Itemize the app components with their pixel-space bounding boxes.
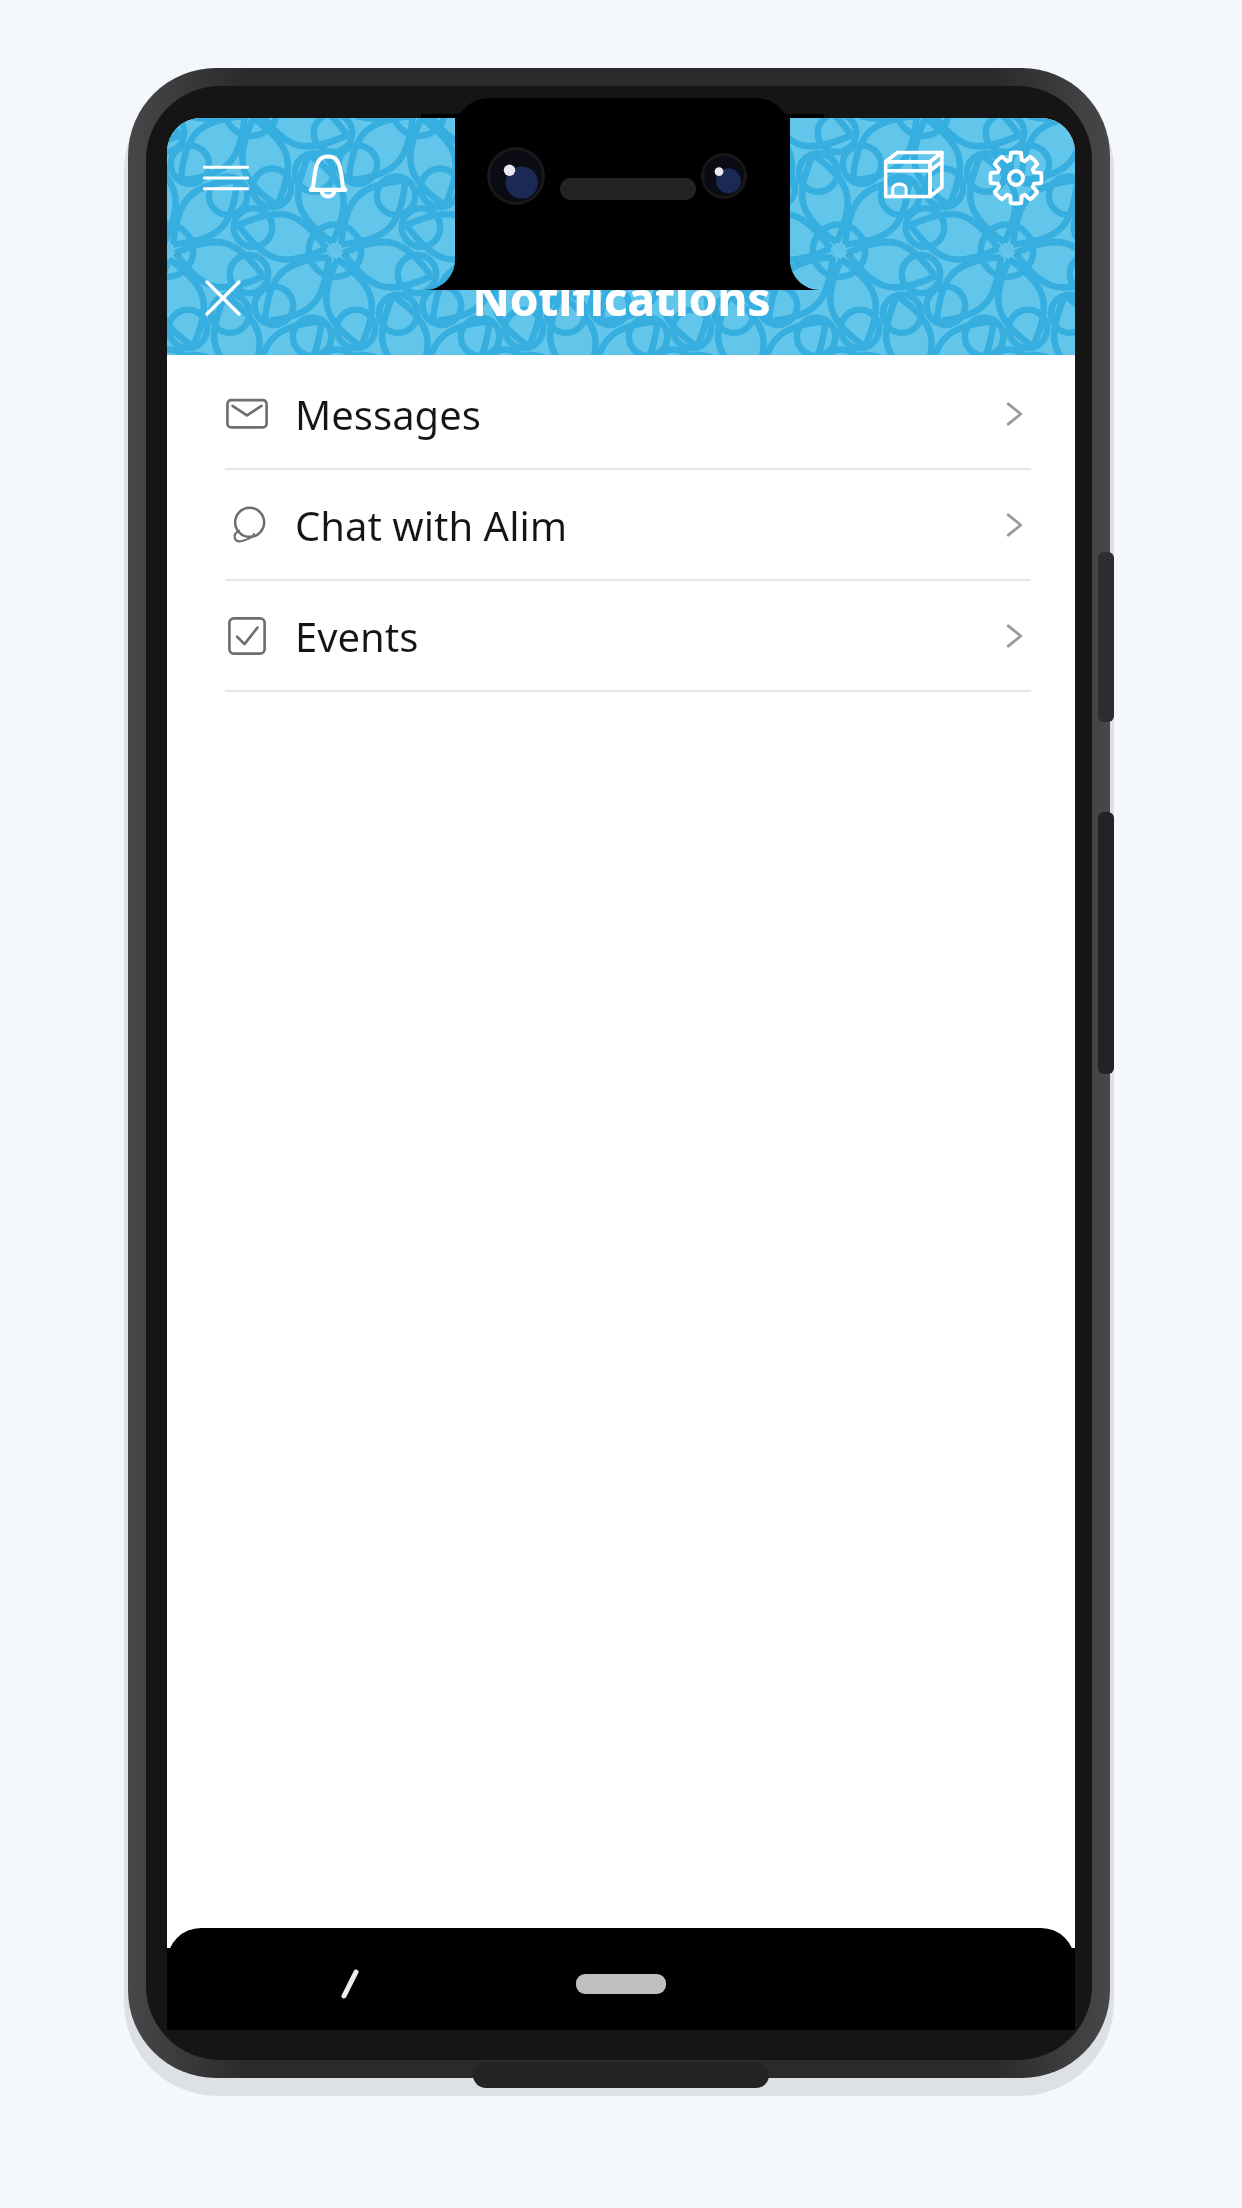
staticText: Events bbox=[295, 609, 419, 663]
button[interactable]: Settings bbox=[979, 141, 1053, 215]
staticText: Chat with Alim bbox=[295, 498, 568, 552]
button[interactable]: Notifications bbox=[291, 141, 365, 215]
button[interactable]: Close bbox=[187, 262, 259, 334]
staticText: Messages bbox=[295, 387, 481, 441]
button[interactable]: Events bbox=[167, 581, 1075, 690]
button[interactable]: Chat with Alim bbox=[167, 470, 1075, 579]
button[interactable]: Messages bbox=[167, 359, 1075, 468]
staticText: Notifications bbox=[472, 267, 771, 330]
button[interactable]: Qibla bbox=[875, 141, 949, 215]
button[interactable]: Menu bbox=[189, 141, 263, 215]
